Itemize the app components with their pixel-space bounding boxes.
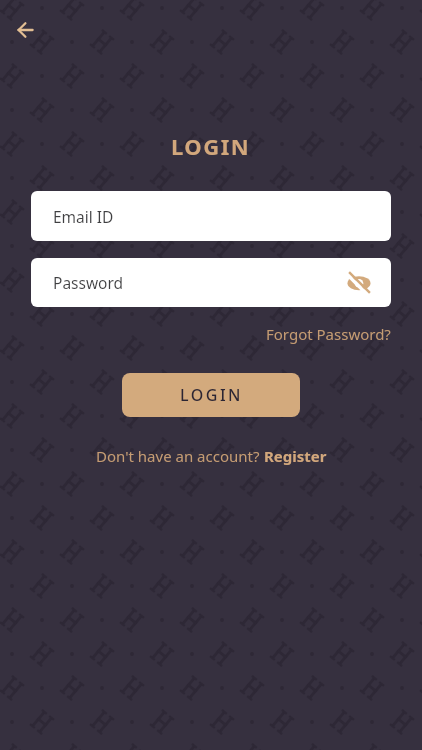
button[interactable] — [347, 271, 371, 295]
button[interactable]: Register — [264, 446, 327, 466]
staticText: Password — [53, 272, 124, 293]
button[interactable]: LOGIN — [122, 373, 300, 417]
staticText: Don't have an account? — [96, 446, 264, 466]
button[interactable] — [8, 12, 44, 48]
staticText: Register — [264, 446, 327, 466]
staticText: Email ID — [53, 206, 114, 227]
staticText: LOGIN — [180, 384, 243, 406]
button[interactable]: Forgot Password? — [266, 324, 391, 344]
staticText: LOGIN — [171, 131, 251, 161]
button[interactable]: Email ID — [31, 191, 391, 241]
staticText: Forgot Password? — [266, 324, 391, 344]
button[interactable]: Password — [31, 258, 391, 307]
